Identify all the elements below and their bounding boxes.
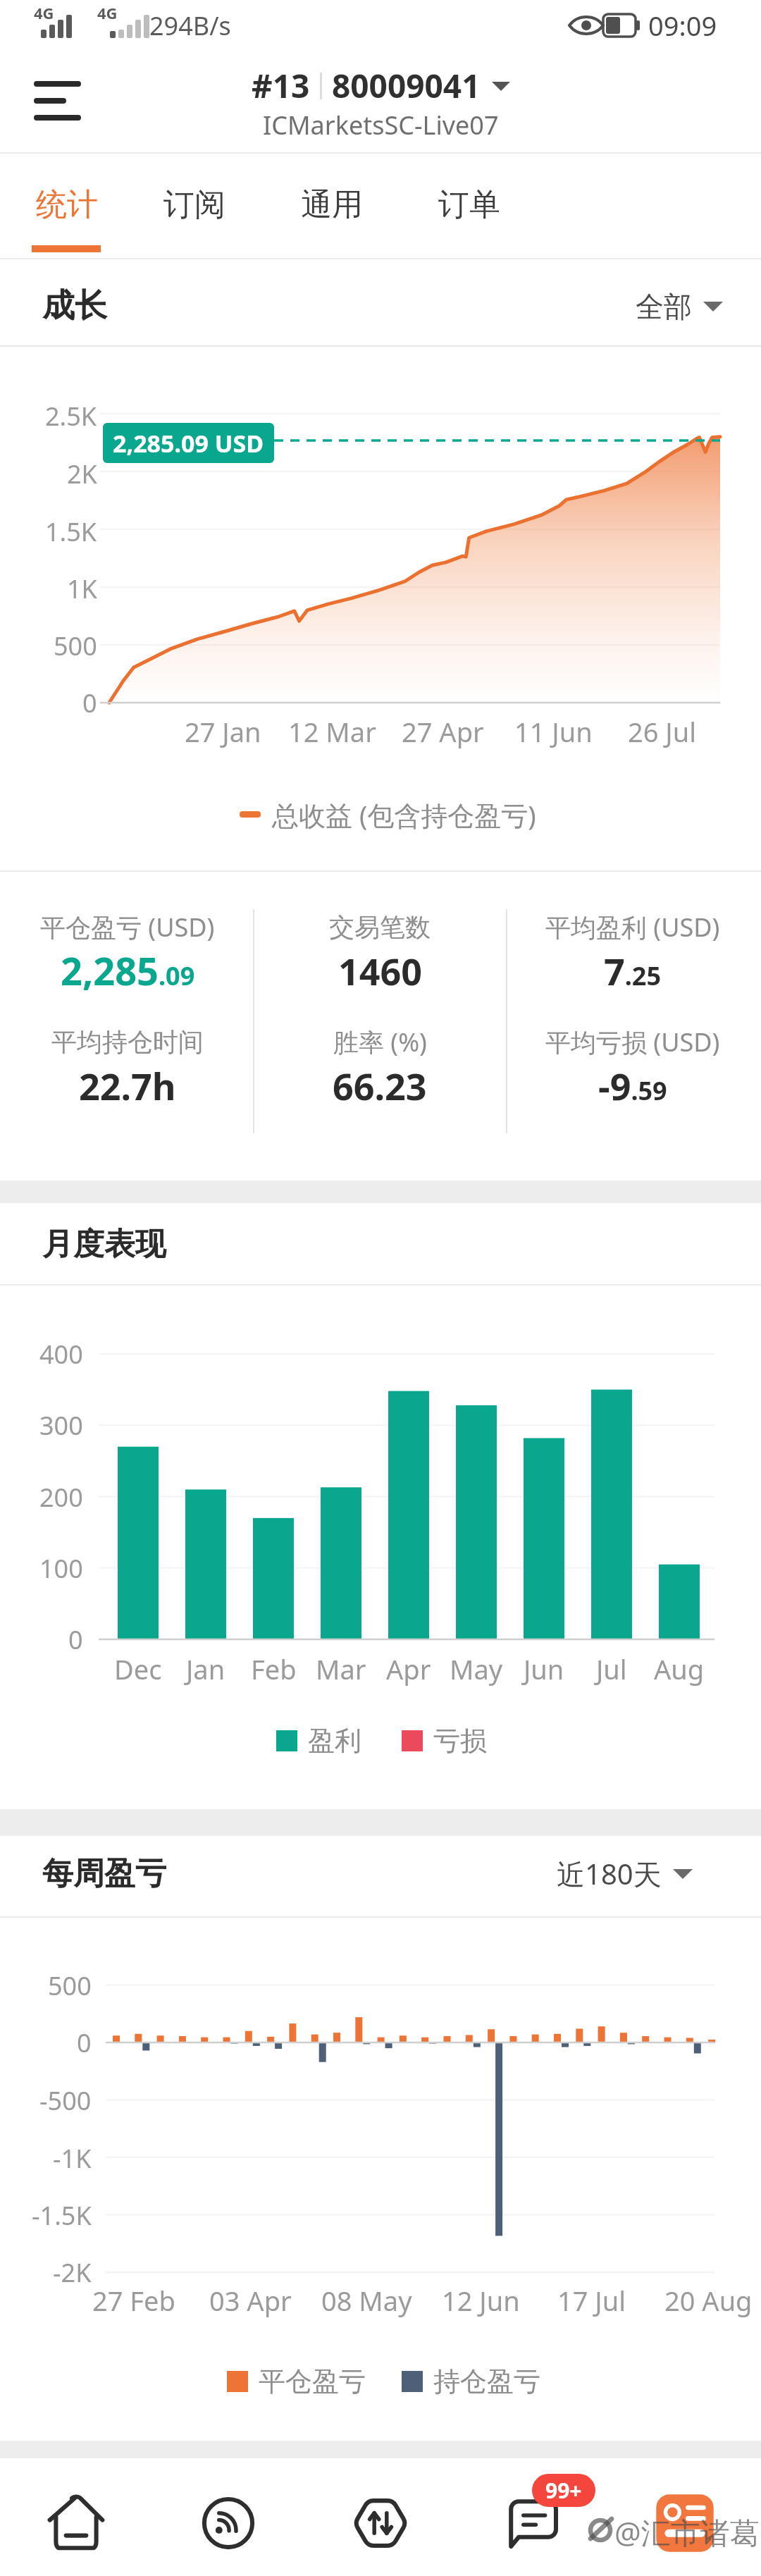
staticText: -2K [53,2255,92,2290]
staticText: 03 Apr [209,2282,292,2319]
staticText: 全部 [636,289,692,324]
button[interactable] [20,2467,132,2576]
staticText: @汇市诸葛 [614,2512,760,2552]
button[interactable] [172,2467,285,2576]
staticText: 17 Jul [557,2282,626,2319]
staticText: 通用 [301,185,363,224]
staticText: -500 [39,2083,92,2118]
staticText: May [450,1651,503,1687]
staticText: -1K [53,2141,92,2176]
staticText: -9.59 [598,1061,667,1111]
button[interactable]: 订阅 [159,169,230,240]
staticText: 平均盈利 (USD) [545,910,720,944]
staticText: 200 [39,1480,83,1515]
staticText: 27 Feb [92,2282,175,2319]
button[interactable] [476,2467,589,2576]
staticText: ICMarketsSC-Live07 [263,108,499,142]
staticText: 09:09 [648,7,717,44]
staticText: 4G [34,2,54,23]
staticText: 500 [54,629,97,663]
staticText: Feb [251,1651,297,1687]
staticText: 2,285.09 USD [113,427,264,460]
staticText: 1460 [338,946,422,996]
staticText: 500 [48,1968,92,2003]
staticText: 月度表现 [42,1225,166,1264]
button[interactable]: 通用 [297,169,367,240]
button[interactable]: 统计 [32,169,102,240]
button[interactable] [324,2467,437,2576]
staticText: 1K [67,572,97,606]
staticText: Dec [114,1651,162,1687]
staticText: 盈利 [308,1724,361,1758]
button[interactable] [21,69,89,137]
button[interactable]: #13 [211,62,550,109]
staticText: 每周盈亏 [42,1854,166,1893]
staticText: 400 [39,1337,83,1372]
staticText: Jun [524,1651,564,1687]
staticText: 12 Mar [288,713,376,750]
staticText: 胜率 (%) [333,1025,427,1059]
staticText: 99+ [545,2476,582,2505]
staticText: Jan [186,1651,225,1687]
staticText: 持仓盈亏 [433,2365,540,2398]
staticText: -1.5K [32,2198,92,2233]
button[interactable] [629,2467,741,2576]
staticText: 2.5K [45,399,97,433]
staticText: 订阅 [163,185,225,224]
staticText: 交易笔数 [329,911,431,943]
staticText: 0 [68,1622,83,1657]
staticText: 11 Jun [514,713,593,750]
staticText: 0 [77,2026,92,2060]
staticText: 66.23 [333,1061,427,1111]
staticText: 亏损 [433,1724,487,1758]
staticText: 300 [39,1408,83,1443]
staticText: #13 [252,63,310,108]
staticText: 26 Jul [628,713,697,750]
staticText: 27 Jan [185,713,261,750]
staticText: 订单 [438,185,500,224]
staticText: 12 Jun [442,2282,520,2319]
staticText: 2K [67,457,97,491]
staticText: 1.5K [45,514,97,549]
staticText: 成长 [42,285,107,326]
staticText: 平均持仓时间 [51,1026,204,1058]
staticText: 平均亏损 (USD) [545,1025,720,1059]
staticText: 22.7h [79,1061,176,1111]
staticText: 平仓盈亏 [259,2365,366,2398]
staticText: 27 Apr [402,713,484,750]
staticText: 4G [97,2,118,23]
staticText: Aug [654,1651,705,1687]
staticText: 0 [82,686,97,720]
staticText: 100 [39,1551,83,1586]
staticText: 总收益 (包含持仓盈亏) [272,796,536,833]
staticText: 近180天 [557,1854,662,1893]
staticText: 7.25 [604,946,662,996]
button[interactable]: 订单 [434,169,505,240]
button[interactable]: 近180天 [557,1849,733,1898]
staticText: 2,285.09 [61,944,195,997]
staticText: Apr [386,1651,431,1687]
staticText: 平仓盈亏 (USD) [40,910,215,944]
staticText: 统计 [36,185,98,224]
staticText: Jul [596,1651,627,1687]
staticText: 08 May [321,2282,412,2319]
staticText: 294B/s [149,8,231,43]
button[interactable]: 全部 [636,282,748,331]
staticText: 20 Aug [664,2282,753,2319]
staticText: Mar [316,1651,366,1687]
staticText: 80009041 [332,63,481,108]
